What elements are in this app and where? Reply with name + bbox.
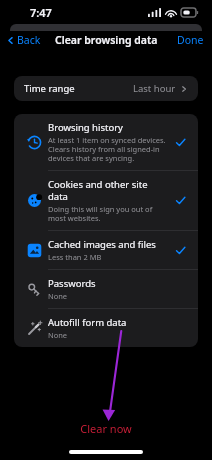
button[interactable]: Passwords <box>14 270 198 308</box>
staticText: At least 1 item on synced devices. Clear… <box>48 135 166 163</box>
button[interactable]: Back <box>0 31 47 49</box>
button[interactable]: Time range <box>14 76 198 101</box>
button[interactable]: Clear now <box>70 418 142 439</box>
staticText: Less than 2 MB <box>48 252 102 262</box>
staticText: Doing this will sign you out of most web… <box>48 204 166 223</box>
staticText: Done <box>177 33 204 47</box>
staticText: None <box>48 330 68 340</box>
staticText: None <box>48 291 68 301</box>
staticText: Passwords <box>48 277 96 290</box>
button[interactable]: Browsing history <box>14 114 198 170</box>
button[interactable]: Cached images and files <box>14 231 198 269</box>
staticText: Back <box>17 33 41 47</box>
button[interactable]: Autofill form data <box>14 309 198 347</box>
staticText: 7:47 <box>30 5 52 20</box>
staticText: Cached images and files <box>48 238 156 251</box>
other: Home indicator <box>69 450 143 454</box>
button[interactable]: Done <box>171 31 212 49</box>
staticText: Last hour <box>133 82 176 95</box>
staticText: Clear now <box>80 421 132 436</box>
staticText: Browsing history <box>48 121 123 134</box>
staticText: Time range <box>24 82 133 95</box>
staticText: Clear browsing data <box>55 33 158 47</box>
button[interactable]: Cookies and other site data <box>14 171 198 230</box>
staticText: Autofill form data <box>48 316 127 329</box>
staticText: Cookies and other site data <box>48 178 166 203</box>
